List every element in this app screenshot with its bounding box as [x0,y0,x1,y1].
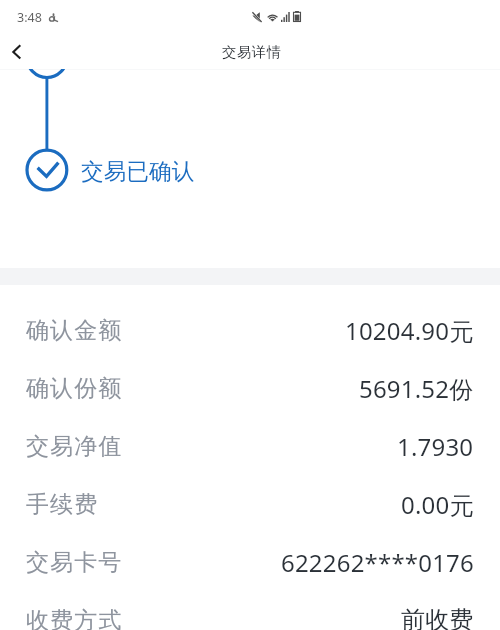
staticText: 622262****0176 [281,546,474,579]
staticText: 确认金额 [26,316,123,345]
staticText: 前收费 [401,605,474,630]
button[interactable]: 手续费 [0,475,500,533]
staticText: 交易净值 [26,432,123,461]
staticText: 手续费 [26,490,99,519]
staticText: 交易卡号 [26,548,123,577]
button[interactable]: 收费方式 [0,591,500,630]
button[interactable]: 确认份额 [0,359,500,417]
staticText: 3:48 [17,9,42,26]
staticText: 1.7930 [397,430,474,463]
staticText: 0.00元 [401,488,474,521]
staticText: 交易详情 [222,43,282,61]
button[interactable]: 确认金额 [0,301,500,359]
button[interactable]: Back [0,32,42,70]
button[interactable]: 交易卡号 [0,533,500,591]
staticText: 5691.52份 [359,372,474,405]
button[interactable]: 交易净值 [0,417,500,475]
staticText: 交易已确认 [81,157,195,185]
staticText: 确认份额 [26,374,123,403]
staticText: 10204.90元 [345,314,474,347]
staticText: 收费方式 [26,606,123,630]
